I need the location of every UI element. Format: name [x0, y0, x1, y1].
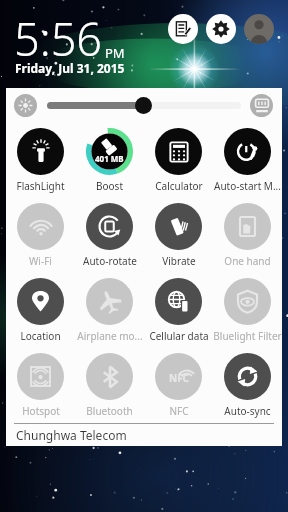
staticText: Auto-rotate: [83, 254, 137, 268]
button[interactable]: Brightness slider: [47, 102, 241, 109]
staticText: Auto-start M...: [214, 179, 281, 193]
staticText: 5:56: [14, 8, 103, 69]
staticText: NFC: [169, 404, 189, 418]
button[interactable]: Location: [6, 273, 75, 343]
staticText: Hotspot: [22, 404, 60, 418]
button[interactable]: FlashLight: [6, 123, 75, 193]
staticText: One hand op...: [213, 254, 282, 268]
button[interactable]: Hotspot: [6, 348, 75, 418]
button[interactable]: Auto-sync: [213, 348, 282, 418]
staticText: Cellular data: [149, 329, 209, 343]
button[interactable]: Bluelight Filter: [213, 273, 282, 343]
button[interactable]: Auto brightness: [250, 94, 273, 117]
button[interactable]: Auto-rotate: [75, 198, 144, 268]
staticText: Boost: [96, 179, 123, 193]
staticText: Vibrate: [162, 254, 196, 268]
button[interactable]: Decrease brightness: [14, 94, 37, 117]
button[interactable]: Vibrate: [144, 198, 213, 268]
button[interactable]: Cellular data: [144, 273, 213, 343]
button[interactable]: Calculator: [144, 123, 213, 193]
button[interactable]: Settings: [206, 14, 236, 44]
staticText: Airplane mo...: [77, 329, 143, 343]
button[interactable]: Auto-start M...: [213, 123, 282, 193]
staticText: Auto-sync: [224, 404, 271, 418]
staticText: PM: [105, 44, 125, 62]
button[interactable]: Airplane mo...: [75, 273, 144, 343]
button[interactable]: Wi-Fi: [6, 198, 75, 268]
staticText: Bluetooth: [86, 404, 133, 418]
staticText: 401 MB: [95, 153, 124, 164]
staticText: Chunghwa Telecom: [16, 427, 127, 443]
button[interactable]: One hand op...: [213, 198, 282, 268]
staticText: Wi-Fi: [29, 254, 52, 268]
staticText: Location: [20, 329, 61, 343]
button[interactable]: 401 MB: [75, 123, 144, 193]
staticText: FlashLight: [16, 179, 65, 193]
staticText: Friday, Jul 31, 2015: [15, 60, 125, 76]
button[interactable]: User profile: [244, 14, 274, 44]
staticText: Calculator: [155, 179, 203, 193]
staticText: NFC: [169, 371, 190, 385]
button[interactable]: Bluetooth: [75, 348, 144, 418]
button[interactable]: NFC: [144, 348, 213, 418]
staticText: Bluelight Filter: [213, 329, 282, 343]
button[interactable]: Notes: [168, 14, 198, 44]
